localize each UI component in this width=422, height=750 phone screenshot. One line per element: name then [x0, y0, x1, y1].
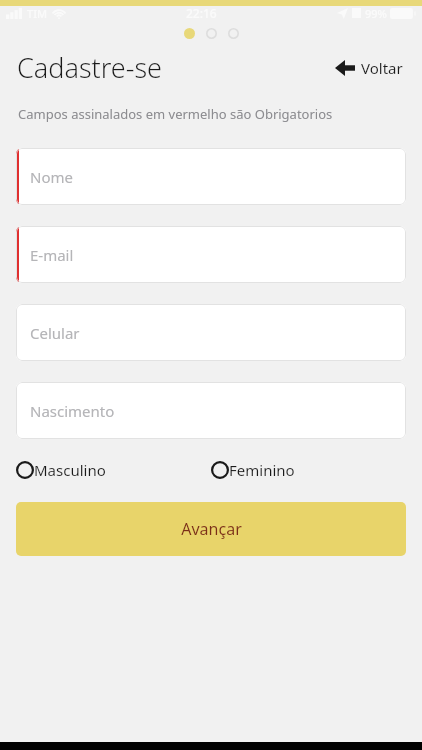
other: Voltar	[335, 60, 355, 76]
staticText: Nome	[30, 167, 73, 187]
button[interactable]: Nome	[16, 148, 406, 205]
button[interactable]: Nascimento	[16, 382, 406, 439]
button[interactable]: Feminino	[211, 460, 406, 480]
staticText: Cadastre-se	[17, 49, 162, 86]
button[interactable]: Celular	[16, 304, 406, 361]
staticText: Nascimento	[30, 401, 115, 421]
button[interactable]: E-mail	[16, 226, 406, 283]
staticText: Masculino	[34, 460, 106, 480]
staticText: 22:16	[186, 5, 217, 21]
staticText: 99%	[365, 6, 387, 21]
button[interactable]: Voltar	[333, 54, 405, 82]
staticText: Avançar	[181, 518, 242, 540]
staticText: TIM	[27, 6, 48, 21]
staticText: Feminino	[229, 460, 295, 480]
staticText: Campos assinalados em vermelho são Obrig…	[18, 105, 333, 123]
staticText: Celular	[30, 323, 80, 343]
button[interactable]: Avançar	[16, 502, 406, 556]
staticText: E-mail	[30, 245, 74, 265]
button[interactable]: Masculino	[16, 460, 211, 480]
staticText: Voltar	[361, 58, 403, 78]
